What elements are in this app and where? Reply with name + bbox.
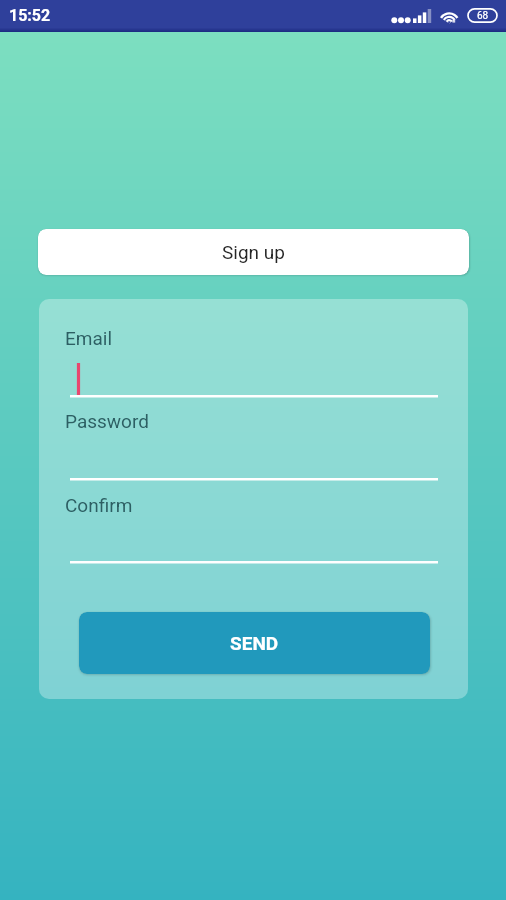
- staticText: Sign up: [222, 241, 285, 263]
- staticText: Password: [65, 410, 149, 432]
- staticText: Confirm: [65, 494, 133, 516]
- staticText: SEND: [230, 632, 279, 654]
- other: Mobile signal: [412, 8, 433, 24]
- button[interactable]: Password: [65, 404, 442, 484]
- button[interactable]: Sign up: [38, 229, 469, 275]
- other: Battery 68 percent: [467, 8, 498, 23]
- staticText: Email: [65, 327, 113, 349]
- button[interactable]: Email: [65, 321, 442, 401]
- button[interactable]: Confirm: [65, 488, 442, 568]
- staticText: 15:52: [9, 6, 51, 25]
- button[interactable]: SEND: [79, 612, 430, 674]
- other: Wi-Fi: [438, 6, 461, 25]
- other: More notifications: [390, 14, 410, 26]
- staticText: 68: [477, 10, 489, 22]
